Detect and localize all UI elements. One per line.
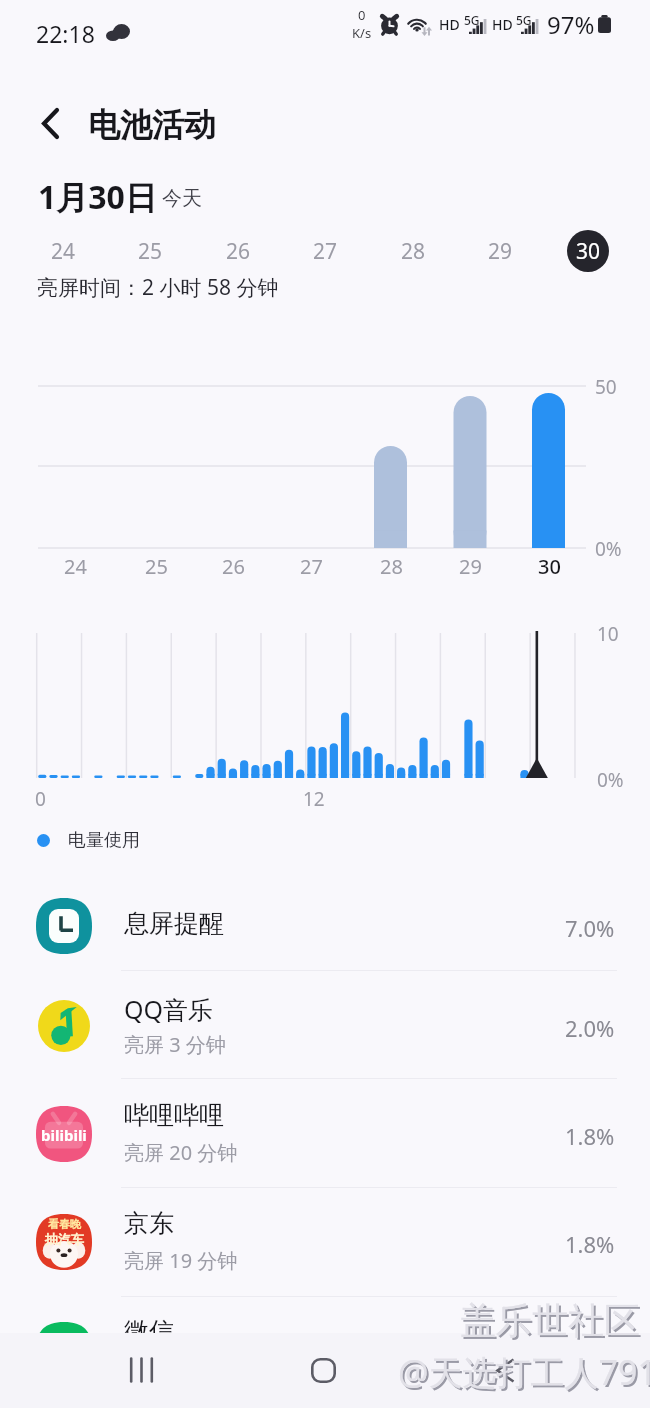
staticText: 27 bbox=[300, 553, 323, 580]
button[interactable]: 26 bbox=[209, 222, 267, 280]
staticText: 抽汽车 bbox=[45, 1231, 84, 1247]
staticText: 27 bbox=[313, 237, 338, 266]
button[interactable]: 息屏提醒 bbox=[0, 872, 650, 980]
staticText: 哔哩哔哩 bbox=[124, 1100, 224, 1131]
staticText: 电量使用 bbox=[68, 829, 140, 852]
button[interactable]: QQ音乐 bbox=[0, 972, 650, 1080]
staticText: 今天 bbox=[162, 186, 202, 211]
button[interactable]: 微信 bbox=[0, 1296, 650, 1404]
button[interactable]: bilibili bbox=[0, 1080, 650, 1188]
staticText: 亮屏 19 分钟 bbox=[124, 1247, 238, 1274]
button[interactable]: Back bbox=[475, 1340, 535, 1400]
button[interactable]: 看春晚 bbox=[0, 1188, 650, 1296]
staticText: 1月30日 bbox=[38, 175, 157, 215]
staticText: 25 bbox=[138, 237, 163, 266]
staticText: 京东 bbox=[124, 1208, 174, 1239]
staticText: HD bbox=[439, 15, 460, 34]
staticText: 息屏提醒 bbox=[124, 908, 224, 939]
staticText: 50 bbox=[595, 374, 617, 400]
staticText: 看春晚 bbox=[48, 1217, 81, 1231]
button[interactable]: 27 bbox=[296, 222, 354, 280]
staticText: 亮屏 3 分钟 bbox=[124, 1031, 226, 1058]
staticText: 24 bbox=[51, 237, 76, 266]
staticText: 1.8% bbox=[565, 1121, 615, 1151]
staticText: K/s bbox=[352, 24, 372, 42]
staticText: 29 bbox=[488, 237, 513, 266]
button[interactable]: 30 bbox=[559, 222, 617, 280]
staticText: 30 bbox=[576, 237, 601, 266]
staticText: 30 bbox=[538, 553, 561, 580]
staticText: 10 bbox=[597, 621, 619, 647]
staticText: 盖乐世社区 bbox=[460, 1298, 640, 1343]
staticText: @天选打工人791 bbox=[400, 1351, 650, 1397]
staticText: 亮屏 20 分钟 bbox=[124, 1139, 238, 1166]
button[interactable]: 29 bbox=[471, 222, 529, 280]
staticText: 5G bbox=[516, 12, 532, 28]
staticText: 24 bbox=[64, 553, 87, 580]
staticText: 25 bbox=[145, 553, 168, 580]
button[interactable]: 电量使用 bbox=[37, 826, 140, 854]
staticText: 亮屏 55 分钟 bbox=[124, 1355, 238, 1382]
staticText: 0% bbox=[597, 767, 624, 793]
staticText: 12 bbox=[303, 786, 325, 812]
staticText: 22:18 bbox=[36, 18, 95, 46]
staticText: 26 bbox=[222, 553, 245, 580]
staticText: 0 bbox=[358, 6, 366, 24]
staticText: 0% bbox=[595, 536, 622, 562]
staticText: 盖乐世社区 bbox=[462, 1300, 642, 1345]
staticText: HD bbox=[492, 15, 513, 34]
staticText: bilibili bbox=[41, 1125, 87, 1145]
button[interactable]: Back bbox=[22, 95, 78, 151]
staticText: 0 bbox=[35, 786, 46, 812]
button[interactable]: Home bbox=[293, 1340, 353, 1400]
staticText: 1.8% bbox=[565, 1229, 615, 1259]
staticText: 电池活动 bbox=[88, 105, 216, 141]
staticText: 28 bbox=[401, 237, 426, 266]
button[interactable]: Recent apps bbox=[111, 1340, 171, 1400]
button[interactable]: 28 bbox=[384, 222, 442, 280]
button[interactable]: 25 bbox=[121, 222, 179, 280]
staticText: 亮屏时间：2 小时 58 分钟 bbox=[37, 273, 279, 301]
staticText: 28 bbox=[380, 553, 403, 580]
staticText: QQ音乐 bbox=[124, 992, 214, 1026]
staticText: 1.5% bbox=[565, 1337, 615, 1367]
staticText: 2.0% bbox=[565, 1013, 615, 1043]
staticText: @天选打工人791 bbox=[398, 1349, 650, 1395]
staticText: 微信 bbox=[124, 1316, 174, 1347]
staticText: 29 bbox=[459, 553, 482, 580]
staticText: 5G bbox=[464, 12, 480, 28]
button[interactable]: 24 bbox=[34, 222, 92, 280]
staticText: 26 bbox=[226, 237, 251, 266]
staticText: 97% bbox=[547, 8, 595, 41]
staticText: 7.0% bbox=[565, 913, 615, 943]
